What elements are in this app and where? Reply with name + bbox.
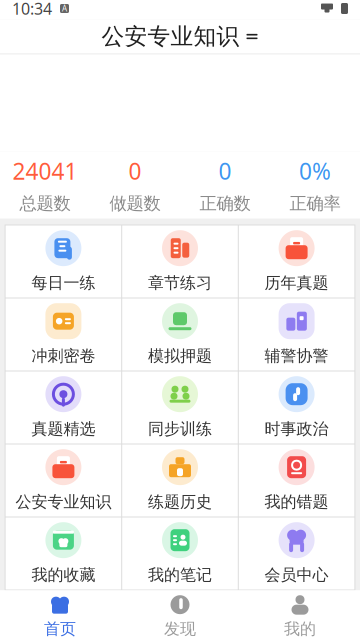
staticText: 我的 — [284, 619, 316, 639]
button[interactable]: 每日一练 — [6, 225, 121, 297]
staticText: 历年真题 — [265, 273, 329, 293]
button[interactable]: 时事政治 — [239, 371, 354, 443]
staticText: 我的收藏 — [31, 565, 95, 585]
button[interactable]: 历年真题 — [239, 225, 354, 297]
button[interactable]: 首页 — [0, 590, 120, 640]
staticText: 冲刺密卷 — [31, 346, 95, 366]
staticText: 10:34 — [12, 0, 52, 19]
staticText: 首页 — [44, 619, 76, 639]
staticText: 公安专业知识 — [15, 492, 111, 512]
staticText: 练题历史 — [148, 492, 212, 512]
button[interactable]: 我的错题 — [239, 444, 354, 516]
staticText: 正确数 — [199, 193, 250, 214]
button[interactable]: 冲刺密卷 — [6, 298, 121, 370]
button[interactable]: 章节练习 — [122, 225, 238, 297]
staticText: 会员中心 — [265, 565, 329, 585]
button[interactable]: 同步训练 — [122, 371, 238, 443]
staticText: 真题精选 — [31, 419, 95, 439]
staticText: 同步训练 — [148, 419, 212, 439]
button[interactable]: 公安专业知识 — [6, 444, 121, 516]
staticText: A — [62, 3, 67, 14]
staticText: 章节练习 — [148, 273, 212, 293]
staticText: 公安专业知识 — [101, 23, 239, 50]
staticText: 我的错题 — [265, 492, 329, 512]
button[interactable]: 会员中心 — [239, 517, 354, 589]
button[interactable]: 我的笔记 — [122, 517, 238, 589]
staticText: 辅警协警 — [265, 346, 329, 366]
button[interactable]: 辅警协警 — [239, 298, 354, 370]
staticText: 时事政治 — [265, 419, 329, 439]
button[interactable]: 我的 — [240, 590, 360, 640]
button[interactable]: 我的收藏 — [6, 517, 121, 589]
staticText: 发现 — [164, 619, 196, 639]
button[interactable]: 模拟押题 — [122, 298, 238, 370]
staticText: 做题数 — [109, 193, 160, 214]
button[interactable]: 发现 — [120, 590, 240, 640]
button[interactable]: 真题精选 — [6, 371, 121, 443]
staticText: 总题数 — [19, 193, 70, 214]
button[interactable]: 公安专业知识 — [0, 19, 360, 53]
staticText: 0% — [299, 156, 331, 186]
staticText: 每日一练 — [31, 273, 95, 293]
staticText: 0 — [218, 156, 231, 186]
staticText: 0 — [128, 156, 141, 186]
staticText: 正确率 — [289, 193, 340, 214]
button[interactable]: 练题历史 — [122, 444, 238, 516]
staticText: 我的笔记 — [148, 565, 212, 585]
staticText: 模拟押题 — [148, 346, 212, 366]
staticText: 24041 — [12, 156, 77, 186]
